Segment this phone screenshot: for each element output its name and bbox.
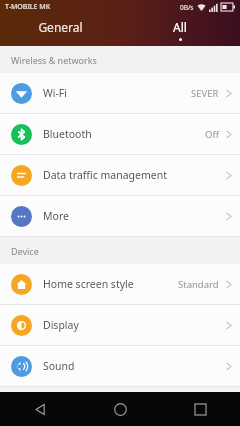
staticText: Standard	[178, 278, 219, 291]
button[interactable]: Home screen style	[0, 264, 240, 305]
button[interactable]: Back	[0, 392, 80, 426]
button[interactable]: All	[120, 14, 240, 46]
button[interactable]: Bluetooth	[0, 114, 240, 155]
button[interactable]: Home	[80, 392, 160, 426]
staticText: General	[38, 19, 83, 35]
staticText: Off	[205, 128, 219, 141]
staticText: Device	[11, 245, 39, 257]
staticText: Display	[43, 318, 79, 332]
button[interactable]: General	[0, 14, 120, 46]
button[interactable]: Wi-Fi	[0, 73, 240, 114]
staticText: Sound	[43, 359, 75, 373]
staticText: More	[43, 209, 69, 223]
staticText: 0B/s	[180, 3, 194, 12]
staticText: SEVER	[191, 87, 219, 100]
staticText: Data traffic management	[43, 168, 167, 182]
staticText: All	[173, 19, 187, 35]
button[interactable]: Data traffic management	[0, 155, 240, 196]
staticText: T-MOBILE MK	[5, 2, 51, 12]
staticText: Wireless & networks	[11, 54, 97, 66]
button[interactable]: Sound	[0, 346, 240, 387]
button[interactable]: More	[0, 196, 240, 237]
staticText: Wi-Fi	[43, 86, 68, 100]
button[interactable]: Display	[0, 305, 240, 346]
staticText: Bluetooth	[43, 127, 92, 141]
staticText: Home screen style	[43, 277, 134, 291]
button[interactable]: Recent apps	[160, 392, 240, 426]
